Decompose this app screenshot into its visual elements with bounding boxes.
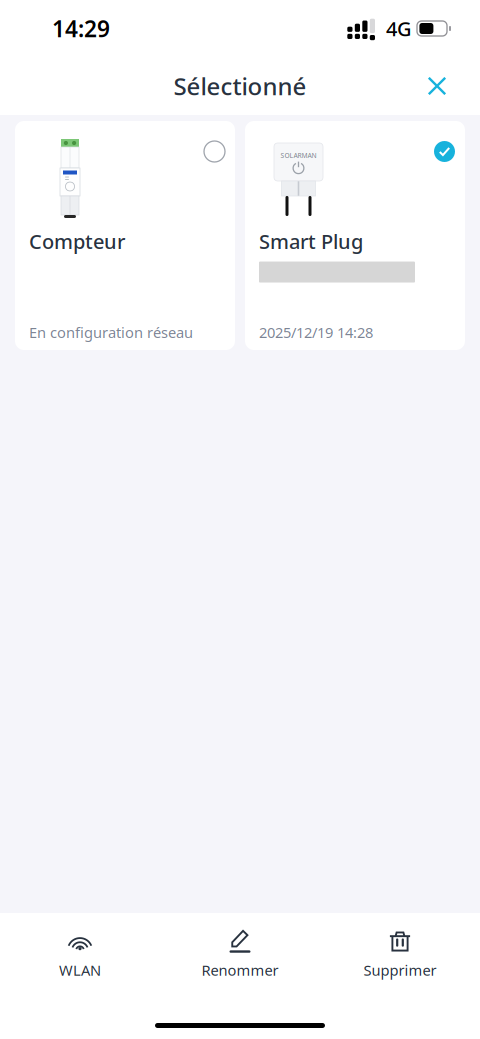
button[interactable]: WLAN	[0, 923, 160, 987]
staticText: Compteur	[29, 228, 125, 255]
staticText: 2025/12/19 14:28	[259, 322, 373, 342]
staticText: Renommer	[201, 960, 278, 980]
staticText: Sélectionné	[173, 70, 306, 102]
button[interactable]: Supprimer	[320, 923, 480, 987]
staticText: 14:29	[52, 13, 110, 43]
button[interactable]: Compteur	[15, 121, 235, 350]
staticText: SOLARMAN	[280, 151, 316, 160]
staticText: WLAN	[59, 960, 101, 980]
staticText: Supprimer	[363, 960, 436, 980]
staticText: En configuration réseau	[29, 322, 193, 342]
button[interactable]: Renommer	[160, 923, 320, 987]
button[interactable]: Fermer	[415, 64, 459, 108]
staticText: Smart Plug	[259, 228, 363, 255]
button[interactable]: SOLARMAN	[245, 121, 465, 350]
staticText: 4G	[386, 15, 412, 42]
